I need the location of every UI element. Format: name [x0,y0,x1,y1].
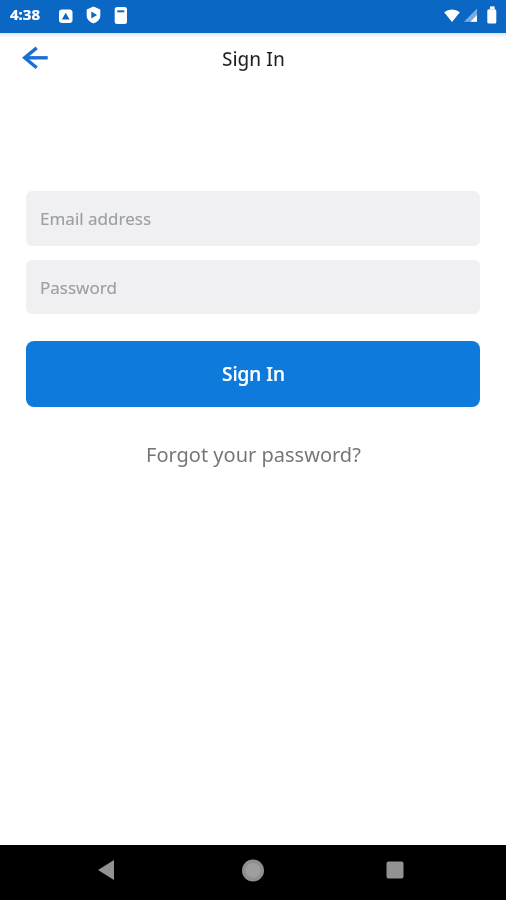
staticText: Sign In [222,361,285,387]
button[interactable]: Password [26,260,480,314]
staticText: Email address [40,207,152,230]
staticText: Sign In [222,46,285,72]
button[interactable]: Sign In [26,341,480,407]
staticText: 4:38 [10,4,40,24]
staticText: Password [40,276,117,299]
button[interactable]: Forgot your password? [0,441,506,468]
button[interactable] [16,37,56,77]
button[interactable] [85,845,140,900]
button[interactable]: Email address [26,191,480,246]
button[interactable] [366,845,421,900]
staticText: Forgot your password? [146,441,361,468]
button[interactable] [226,845,281,900]
